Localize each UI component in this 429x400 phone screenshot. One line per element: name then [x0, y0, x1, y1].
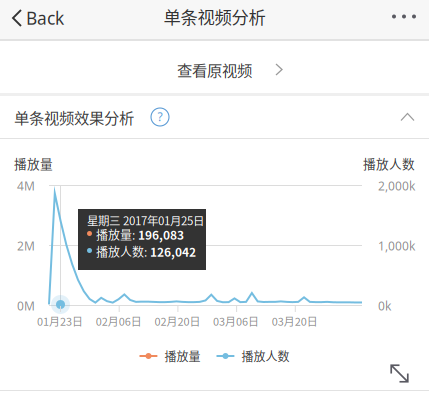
staticText: 播放量: [164, 347, 200, 365]
staticText: 播放人数: [363, 154, 415, 172]
staticText: 0k: [378, 298, 391, 314]
staticText: 02月20日: [154, 313, 200, 329]
staticText: ?: [157, 108, 162, 124]
staticText: 2,000k: [378, 178, 415, 194]
staticText: 单条视频分析: [163, 4, 265, 29]
staticText: 播放量: 196,083: [96, 226, 184, 243]
staticText: 0M: [17, 298, 35, 314]
button[interactable]: 查看原视频: [15, 44, 429, 95]
staticText: 02月06日: [96, 313, 142, 329]
staticText: 查看原视频: [177, 58, 252, 81]
button[interactable]: Full screen: [381, 355, 418, 392]
staticText: 03月06日: [213, 313, 259, 329]
staticText: 播放人数: [241, 347, 289, 365]
staticText: 播放人数: 126,042: [96, 243, 196, 260]
staticText: 星期三 2017年01月25日: [87, 212, 204, 229]
staticText: 2M: [17, 238, 35, 254]
staticText: 1,000k: [378, 238, 415, 254]
staticText: 4M: [17, 178, 35, 194]
button[interactable]: 单条视频效果分析: [0, 96, 340, 138]
staticText: 单条视频效果分析: [14, 106, 134, 128]
staticText: 播放量: [14, 154, 53, 172]
staticText: Back: [26, 6, 64, 29]
staticText: 03月20日: [272, 313, 318, 329]
button[interactable]: Back: [0, 0, 74, 36]
button[interactable]: More options: [378, 0, 429, 33]
button[interactable]: Collapse section: [387, 96, 429, 138]
staticText: 01月23日: [37, 313, 83, 329]
